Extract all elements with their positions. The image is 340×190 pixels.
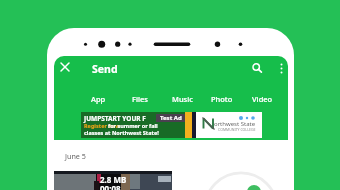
staticText: classes at Northwest State! (84, 129, 159, 136)
staticText: June 5 (65, 151, 86, 161)
button[interactable]: Search (247, 58, 267, 78)
button[interactable]: JUMPSTART YOUR F (81, 112, 262, 138)
staticText: Photo (211, 94, 233, 104)
staticText: Register now (84, 122, 120, 129)
staticText: for summer or fall (108, 122, 158, 129)
staticText: JUMPSTART YOUR F (84, 114, 146, 123)
button[interactable]: Video (246, 92, 278, 106)
staticText: 2.8 MB (100, 174, 127, 185)
button[interactable]: Send (92, 62, 118, 74)
button[interactable]: App (82, 92, 114, 106)
button[interactable]: Nearby device (247, 185, 261, 190)
staticText: COMMUNITY COLLEGE (218, 127, 256, 132)
staticText: orthwest State (214, 120, 256, 128)
staticText: App (91, 94, 106, 104)
button[interactable]: Photo (206, 92, 238, 106)
staticText: Test Ad (160, 114, 182, 122)
staticText: Video (252, 94, 273, 104)
button[interactable]: Close (55, 57, 75, 77)
staticText: 00:08 (100, 183, 121, 190)
staticText: Send (92, 62, 118, 74)
button[interactable]: 2.8 MB (54, 171, 172, 190)
button[interactable]: Music (166, 92, 198, 106)
button[interactable]: Files (124, 92, 156, 106)
staticText: Files (132, 94, 148, 104)
button[interactable]: More options (271, 58, 291, 78)
staticText: Music (172, 94, 193, 104)
